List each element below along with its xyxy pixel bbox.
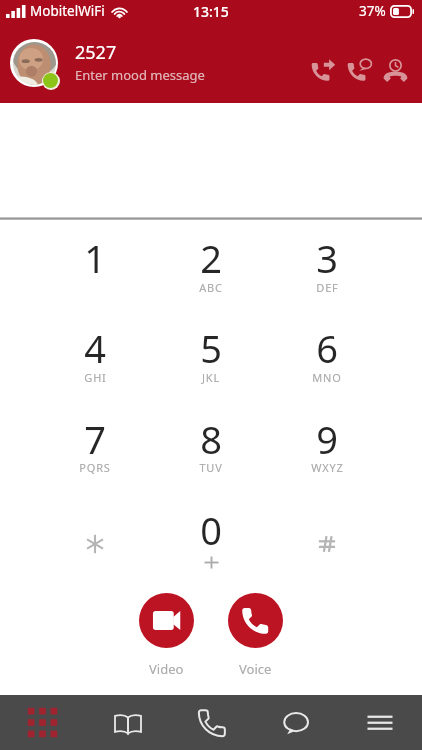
staticText: MobitelWiFi [30, 2, 105, 20]
staticText: 5 [200, 322, 222, 374]
staticText: 37% [359, 2, 386, 20]
button[interactable]: Call forward [306, 54, 341, 89]
staticText: 4 [84, 322, 106, 374]
staticText: WXYZ [311, 460, 344, 475]
button[interactable]: 2 [153, 220, 269, 310]
button[interactable]: Video [139, 593, 194, 678]
staticText: 2527 [75, 40, 117, 65]
button[interactable] [37, 491, 153, 582]
staticText: 9 [316, 413, 338, 465]
button[interactable]: Menu [338, 695, 422, 750]
button[interactable]: Call history [378, 54, 413, 89]
staticText: 1 [84, 232, 106, 284]
staticText: 0 [200, 504, 222, 556]
button[interactable]: Voicemail [342, 54, 377, 89]
button[interactable]: 7 [37, 400, 153, 491]
staticText: Video [149, 660, 184, 678]
staticText: ABC [199, 280, 223, 295]
staticText: JKL [202, 370, 220, 385]
button[interactable]: 1 [37, 220, 153, 310]
staticText: 2 [200, 232, 222, 284]
staticText: Voice [239, 660, 272, 678]
staticText: 3 [316, 232, 338, 284]
button[interactable]: Voice [228, 593, 283, 678]
staticText: Enter mood message [75, 66, 205, 84]
staticText: 7 [84, 413, 106, 465]
staticText: 8 [200, 413, 222, 465]
button[interactable]: 5 [153, 310, 269, 400]
button[interactable]: 4 [37, 310, 153, 400]
staticText: 13:15 [193, 2, 229, 21]
staticText: 6 [316, 322, 338, 374]
staticText: GHI [84, 370, 107, 385]
button[interactable]: Calls [170, 695, 254, 750]
button[interactable]: 8 [153, 400, 269, 491]
button[interactable] [269, 491, 385, 582]
button[interactable]: Messages [254, 695, 338, 750]
button[interactable]: 6 [269, 310, 385, 400]
button[interactable]: 3 [269, 220, 385, 310]
staticText: DEF [316, 280, 339, 295]
button[interactable]: Contacts [85, 695, 170, 750]
staticText: PQRS [79, 460, 111, 475]
button[interactable]: 0 [153, 491, 269, 582]
button[interactable]: 9 [269, 400, 385, 491]
staticText: TUV [199, 460, 223, 475]
staticText: MNO [312, 370, 342, 385]
button[interactable]: Dialpad [0, 695, 85, 750]
